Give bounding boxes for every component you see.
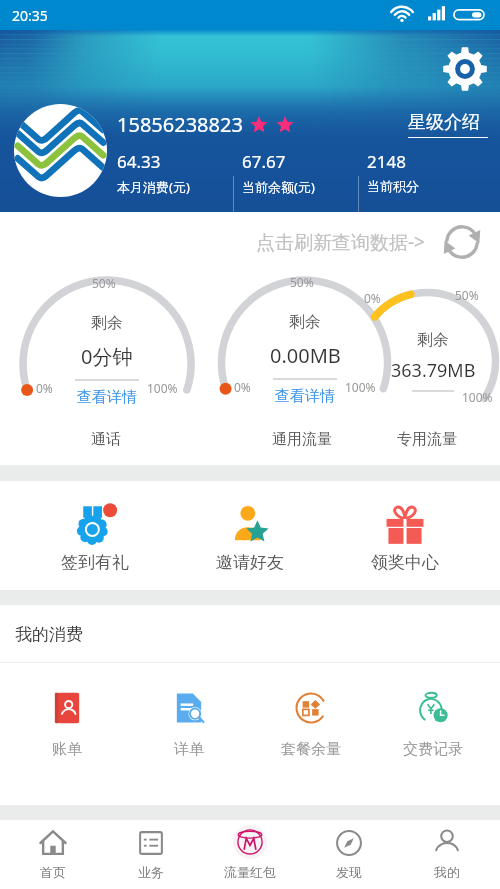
button[interactable]: 我的 [401,826,493,880]
button[interactable]: Settings [443,47,487,91]
button[interactable]: 67.67 [242,150,315,196]
staticText: 67.67 [242,150,286,173]
staticText: 剩余 [289,312,321,332]
staticText: 星级介绍 [408,111,480,134]
staticText: 首页 [40,864,66,880]
button[interactable]: 账单 [12,689,122,759]
button[interactable]: 点击刷新查询数据-> [256,222,482,262]
staticText: 通话 [46,430,166,449]
button[interactable]: 64.33 [117,150,190,196]
staticText: 15856238823 [117,111,243,138]
staticText: 查看详情 [77,388,137,407]
button[interactable]: 2148 [367,150,419,194]
staticText: 0% [364,290,381,306]
staticText: 流量红包 [224,864,276,880]
staticText: 发现 [336,864,362,880]
button[interactable]: 领奖中心 [345,498,465,573]
button[interactable]: 签到有礼 [35,498,155,573]
staticText: 我的 [434,864,460,880]
staticText: 50% [92,275,116,291]
staticText: 剩余 [417,330,449,350]
staticText: 0.00MB [270,342,341,369]
staticText: 领奖中心 [371,552,439,573]
button[interactable]: 套餐余量 [256,689,366,759]
staticText: 2148 [367,150,406,173]
staticText: 业务 [138,864,164,880]
button[interactable]: 邀请好友 [190,498,310,573]
staticText: 点击刷新查询数据-> [256,229,425,255]
staticText: 0分钟 [81,343,133,370]
staticText: 本月消费(元) [117,178,190,196]
staticText: 剩余 [91,313,123,333]
button[interactable]: 查看详情 [275,387,335,406]
button[interactable]: 交费记录 [378,689,488,759]
staticText: 100% [147,380,178,396]
staticText: 64.33 [117,150,161,173]
staticText: 交费记录 [403,740,463,759]
button[interactable]: Account avatar [14,104,107,197]
staticText: 详单 [174,740,204,759]
staticText: 100% [462,389,493,405]
staticText: 专用流量 [367,430,487,449]
staticText: 50% [290,274,314,290]
staticText: 我的消费 [15,624,83,645]
staticText: 当前余额(元) [242,178,315,196]
staticText: 当前积分 [367,178,419,194]
button[interactable]: 流量红包 [204,826,296,880]
button[interactable]: 查看详情 [77,388,137,407]
staticText: 0% [234,379,251,395]
staticText: 0% [36,380,53,396]
staticText: 账单 [52,740,82,759]
staticText: 签到有礼 [61,552,129,573]
staticText: 查看详情 [275,387,335,406]
staticText: 363.79MB [391,358,476,383]
staticText: 100% [345,379,376,395]
button[interactable]: 业务 [105,826,197,880]
staticText: 套餐余量 [281,740,341,759]
staticText: 50% [455,287,479,303]
staticText: 通用流量 [242,430,362,449]
button[interactable]: 详单 [134,689,244,759]
button[interactable]: 发现 [303,826,395,880]
staticText: 邀请好友 [216,552,284,573]
button[interactable]: 星级介绍 [408,111,488,138]
button[interactable]: 首页 [7,826,99,880]
staticText: 20:35 [12,6,48,25]
